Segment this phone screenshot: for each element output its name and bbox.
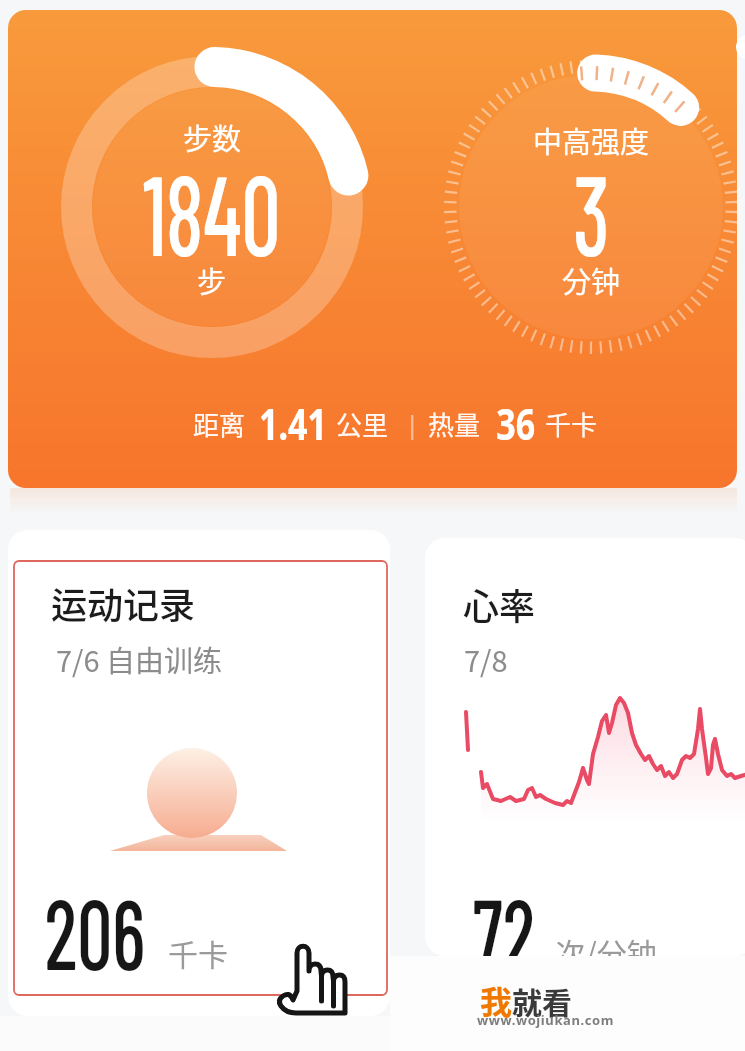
staticText: 运动记录 <box>51 577 196 629</box>
staticText: 千卡 <box>545 405 598 443</box>
staticText: 36 <box>496 394 536 453</box>
staticText: 步 <box>197 259 227 301</box>
staticText: 分钟 <box>562 259 621 301</box>
staticText: 3 <box>573 144 610 278</box>
staticText: 公里 <box>336 405 389 443</box>
staticText: 步数 <box>183 116 242 158</box>
staticText: 中高强度 <box>533 119 650 161</box>
staticText: 千卡 <box>168 931 228 974</box>
staticText: 次/分钟 <box>555 930 657 956</box>
staticText: 距离 <box>193 405 246 443</box>
staticText: 72 <box>473 872 536 956</box>
staticText: 1.41 <box>259 394 327 453</box>
staticText: www.wojiukan.com <box>477 1011 615 1029</box>
staticText: 206 <box>45 872 145 990</box>
button[interactable] <box>8 530 390 1016</box>
button[interactable]: 72 <box>425 538 745 956</box>
staticText: 7/6 自由训练 <box>56 638 223 680</box>
staticText: 1840 <box>143 144 281 278</box>
staticText: 7/8 <box>464 638 508 680</box>
staticText: 就看 <box>512 979 572 1022</box>
staticText: 我 <box>480 977 513 1023</box>
staticText: 心率 <box>463 578 536 630</box>
staticText: | <box>405 406 420 441</box>
button[interactable] <box>8 10 737 488</box>
staticText: 热量 <box>428 405 481 443</box>
